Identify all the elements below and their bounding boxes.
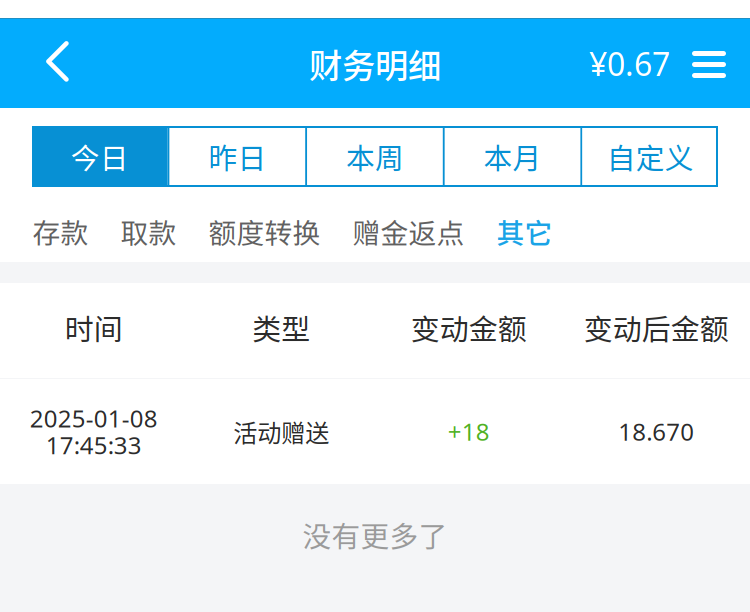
button[interactable]: Back [0,19,90,108]
staticText: 本周 [346,136,404,177]
staticText: 其它 [496,211,552,252]
button[interactable]: 本周 [307,126,443,187]
staticText: +18 [448,416,490,447]
staticText: 时间 [65,307,123,348]
button[interactable]: 昨日 [170,126,305,187]
staticText: 今日 [71,136,129,177]
button[interactable]: 本月 [445,126,580,187]
staticText: 17:45:33 [46,429,142,461]
button[interactable]: 其它 [496,187,552,262]
staticText: 存款 [32,211,88,252]
staticText: 本月 [484,136,542,177]
button[interactable]: 取款 [120,187,176,262]
staticText: ¥0.67 [589,42,670,85]
staticText: 额度转换 [208,211,320,252]
staticText: 18.670 [618,416,694,447]
staticText: 财务明细 [309,39,441,88]
button[interactable]: 额度转换 [208,187,320,262]
staticText: 2025-01-08 [30,402,158,434]
staticText: 赠金返点 [352,211,464,252]
staticText: 取款 [120,211,176,252]
staticText: 变动金额 [411,307,527,348]
button[interactable]: 今日 [32,126,168,187]
staticText: 没有更多了 [302,514,447,555]
button[interactable]: Menu [589,19,750,108]
staticText: 类型 [252,307,310,348]
button[interactable]: 2025-01-08 [0,379,750,484]
button[interactable]: 自定义 [582,126,718,187]
staticText: 自定义 [607,136,694,177]
staticText: 变动后金额 [584,307,729,348]
button[interactable]: 赠金返点 [352,187,464,262]
staticText: 活动赠送 [233,414,329,449]
staticText: 昨日 [208,136,266,177]
button[interactable]: 存款 [32,187,88,262]
